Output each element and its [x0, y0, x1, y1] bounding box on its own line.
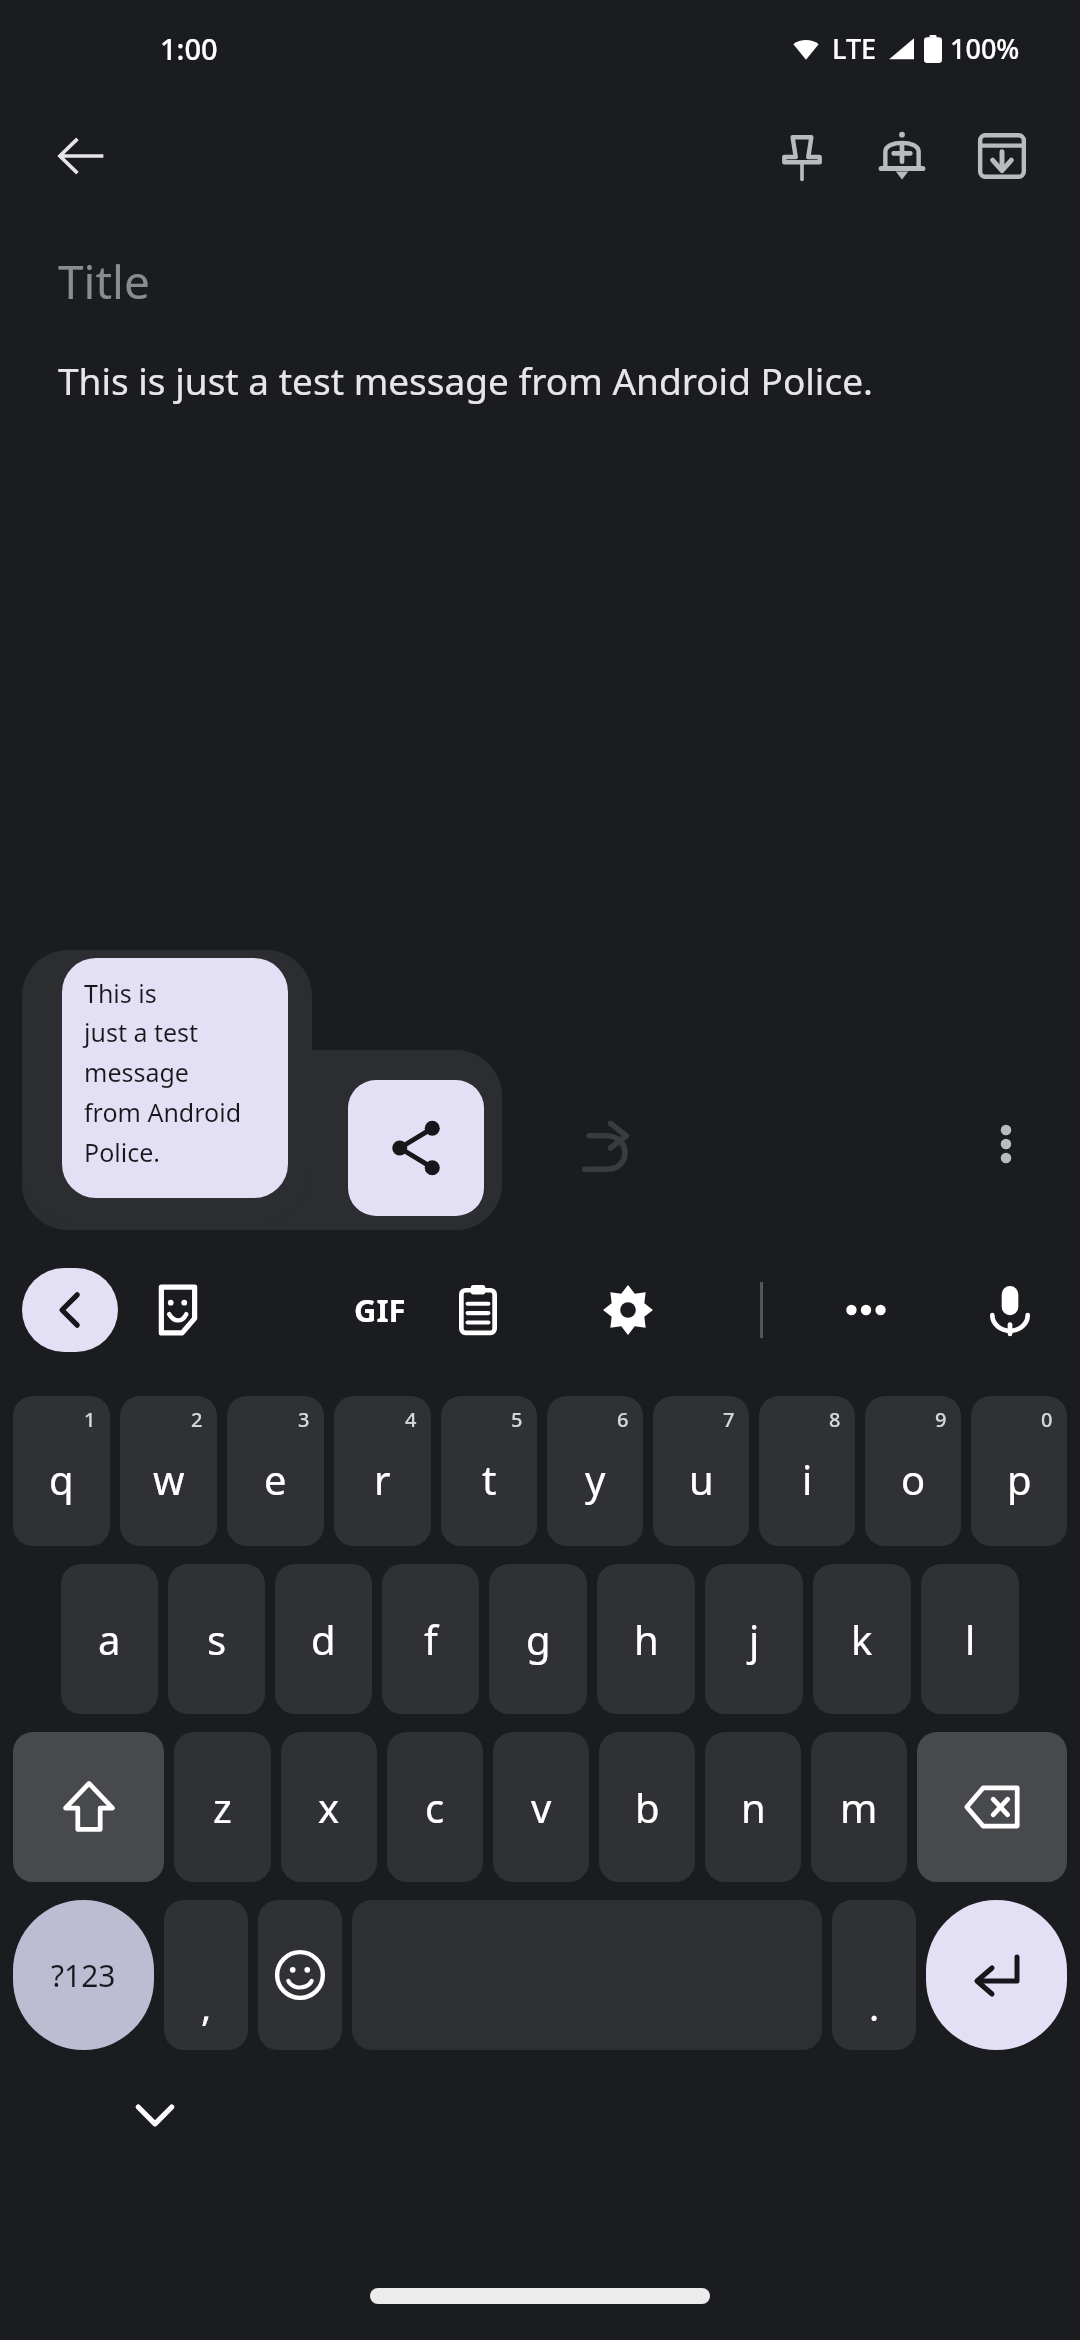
button[interactable]: 0	[971, 1396, 1067, 1546]
staticText: d	[311, 1612, 336, 1666]
staticText: 4	[405, 1406, 417, 1433]
button[interactable]: Backspace	[917, 1732, 1067, 1882]
staticText: w	[153, 1452, 185, 1506]
button[interactable]: v	[493, 1732, 589, 1882]
staticText: q	[49, 1452, 74, 1506]
button[interactable]: .	[832, 1900, 916, 2050]
staticText: 2	[191, 1406, 203, 1433]
staticText: 3	[298, 1406, 310, 1433]
staticText: 1	[84, 1406, 96, 1433]
button[interactable]: a	[61, 1564, 158, 1714]
button[interactable]: Emoji	[258, 1900, 342, 2050]
button[interactable]: Add reminder	[852, 106, 952, 206]
button[interactable]: Voice input	[960, 1250, 1060, 1370]
staticText: a	[98, 1612, 121, 1666]
staticText: This is just a test message from Android…	[84, 976, 242, 1170]
button[interactable]: f	[382, 1564, 479, 1714]
button[interactable]: This is just a test message from Android…	[62, 958, 288, 1198]
staticText: Title	[58, 250, 150, 313]
button[interactable]: Pin	[752, 106, 852, 206]
staticText: 0	[1041, 1406, 1053, 1433]
staticText: GIF	[354, 1289, 406, 1331]
button[interactable]: n	[705, 1732, 801, 1882]
staticText: y	[585, 1452, 606, 1506]
button[interactable]: 8	[759, 1396, 855, 1546]
button[interactable]: c	[387, 1732, 483, 1882]
staticText: b	[635, 1780, 660, 1834]
button[interactable]: 3	[227, 1396, 324, 1546]
staticText: s	[207, 1612, 227, 1666]
staticText: f	[424, 1612, 438, 1666]
button[interactable]: 7	[653, 1396, 749, 1546]
staticText: k	[851, 1612, 873, 1666]
staticText: 1:00	[160, 29, 218, 68]
button[interactable]: Enter	[926, 1900, 1067, 2050]
button[interactable]: Hide keyboard	[110, 2070, 200, 2160]
staticText: u	[689, 1452, 714, 1506]
staticText: i	[802, 1452, 813, 1506]
staticText: c	[425, 1780, 445, 1834]
staticText: m	[840, 1780, 878, 1834]
staticText: o	[901, 1452, 926, 1506]
button[interactable]: m	[811, 1732, 907, 1882]
button[interactable]: 9	[865, 1396, 961, 1546]
staticText: p	[1007, 1452, 1032, 1506]
button[interactable]: Settings	[578, 1250, 678, 1370]
staticText: .	[869, 1980, 880, 2032]
staticText: v	[531, 1780, 552, 1834]
staticText: g	[526, 1612, 551, 1666]
button[interactable]: j	[705, 1564, 803, 1714]
staticText: r	[374, 1452, 391, 1506]
button[interactable]: Stickers	[128, 1250, 228, 1370]
button[interactable]: 4	[334, 1396, 431, 1546]
button[interactable]: b	[599, 1732, 695, 1882]
button[interactable]: GIF	[330, 1250, 430, 1370]
button[interactable]: h	[597, 1564, 695, 1714]
staticText: 7	[723, 1406, 735, 1433]
button[interactable]: s	[168, 1564, 265, 1714]
button[interactable]: z	[174, 1732, 271, 1882]
staticText: LTE	[832, 30, 877, 67]
button[interactable]: Share	[348, 1080, 484, 1216]
staticText: l	[965, 1612, 976, 1666]
staticText: 9	[935, 1406, 947, 1433]
staticText: This is just a test message from Android…	[58, 355, 873, 405]
staticText: x	[318, 1780, 340, 1834]
staticText: 100%	[950, 30, 1020, 67]
staticText: 8	[829, 1406, 841, 1433]
button[interactable]: ,	[164, 1900, 248, 2050]
staticText: 6	[617, 1406, 629, 1433]
staticText: n	[741, 1780, 766, 1834]
button[interactable]: More options	[960, 1098, 1052, 1190]
button[interactable]: Shift	[13, 1732, 164, 1882]
button[interactable]: g	[489, 1564, 587, 1714]
button[interactable]: Redo	[556, 1098, 656, 1198]
staticText: ?123	[51, 1955, 116, 1996]
button[interactable]: 6	[547, 1396, 643, 1546]
button[interactable]: Clipboard	[428, 1250, 528, 1370]
staticText: j	[749, 1612, 760, 1666]
button[interactable]: 1	[13, 1396, 110, 1546]
staticText: ,	[201, 1980, 212, 2032]
staticText: e	[264, 1452, 287, 1506]
button[interactable]: d	[275, 1564, 372, 1714]
button[interactable]: 2	[120, 1396, 217, 1546]
button[interactable]: Archive	[952, 106, 1052, 206]
staticText: z	[213, 1780, 232, 1834]
staticText: h	[634, 1612, 659, 1666]
button[interactable]: x	[281, 1732, 377, 1882]
button[interactable]: More	[816, 1250, 916, 1370]
button[interactable]: ?123	[13, 1900, 154, 2050]
button[interactable]: l	[921, 1564, 1019, 1714]
button[interactable]: 5	[441, 1396, 537, 1546]
staticText: 5	[511, 1406, 523, 1433]
staticText: t	[482, 1452, 497, 1506]
button[interactable]: Back	[22, 1268, 118, 1352]
button[interactable]: k	[813, 1564, 911, 1714]
button[interactable]: Back	[30, 106, 130, 206]
